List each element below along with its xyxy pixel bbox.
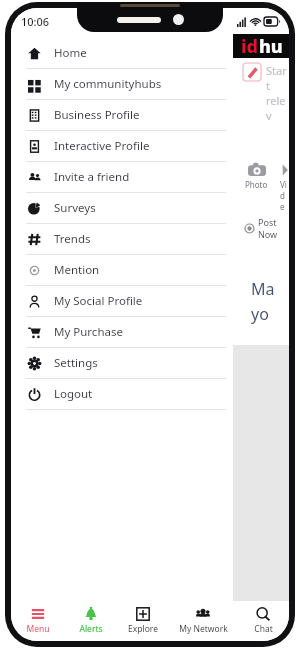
button[interactable]: My Network (169, 601, 237, 641)
button[interactable]: Invite a friend (11, 162, 233, 193)
button[interactable]: My communityhubs (11, 69, 233, 100)
staticText: id (241, 34, 259, 58)
staticText: Photo (245, 179, 268, 190)
button[interactable]: Explore (117, 601, 169, 641)
staticText: Alerts (79, 623, 103, 635)
button[interactable]: My Purchase (11, 317, 233, 348)
staticText: Home (54, 45, 87, 61)
staticText: Start (266, 63, 289, 93)
button[interactable]: Logout (11, 379, 233, 410)
staticText: relev (266, 93, 289, 123)
staticText: Post Now (258, 216, 289, 240)
button[interactable]: Alerts (64, 601, 117, 641)
staticText: My communityhubs (54, 76, 162, 92)
button[interactable]: Trends (11, 224, 233, 255)
staticText: Trends (54, 231, 91, 247)
staticText: My Network (179, 623, 228, 635)
staticText: My Purchase (54, 324, 123, 340)
staticText: Vide (280, 179, 289, 212)
staticText: Surveys (54, 200, 96, 216)
button[interactable]: Chat (237, 601, 289, 641)
staticText: 10:06 (21, 14, 50, 29)
staticText: yo (251, 303, 269, 325)
staticText: Settings (54, 355, 98, 371)
staticText: Ma (251, 278, 275, 300)
staticText: Mention (54, 262, 100, 278)
button[interactable]: My Social Profile (11, 286, 233, 317)
button[interactable]: Mention (11, 255, 233, 286)
staticText: Menu (26, 623, 50, 635)
staticText: My Social Profile (54, 293, 143, 309)
button[interactable]: Home (11, 38, 233, 69)
button[interactable]: Business Profile (11, 100, 233, 131)
staticText: Invite a friend (54, 169, 130, 185)
staticText: Interactive Profile (54, 138, 150, 154)
staticText: hub (259, 34, 289, 58)
staticText: Explore (128, 623, 158, 635)
button[interactable]: Interactive Profile (11, 131, 233, 162)
button[interactable]: Menu (11, 601, 64, 641)
button[interactable]: Surveys (11, 193, 233, 224)
staticText: Business Profile (54, 107, 140, 123)
staticText: Chat (254, 623, 273, 635)
button[interactable]: Settings (11, 348, 233, 379)
staticText: Logout (54, 386, 93, 402)
